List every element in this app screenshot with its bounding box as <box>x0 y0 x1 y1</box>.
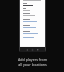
staticText: Add players from <box>18 57 47 62</box>
other: Navigation bar <box>19 48 46 52</box>
button[interactable] <box>20 2 45 7</box>
staticText: all your locations <box>18 62 47 67</box>
button[interactable] <box>20 33 45 34</box>
button[interactable] <box>20 27 45 28</box>
button[interactable] <box>20 7 45 12</box>
button[interactable]: Navigation bar <box>19 0 46 52</box>
button[interactable] <box>20 12 45 17</box>
button[interactable] <box>20 21 45 22</box>
